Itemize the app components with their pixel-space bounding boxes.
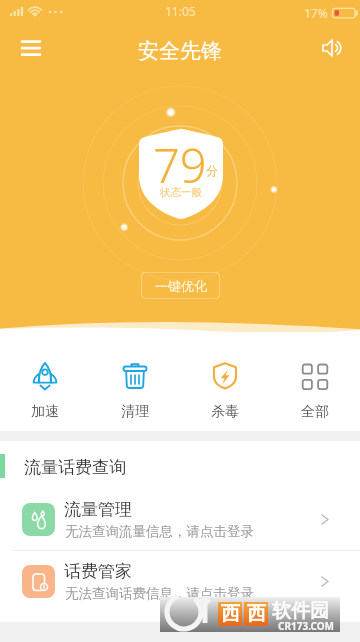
button[interactable]: 流量管理 bbox=[0, 489, 360, 550]
button[interactable]: 一键优化 bbox=[141, 272, 220, 299]
staticText: 话费管家 bbox=[64, 561, 132, 582]
staticText: 清理 bbox=[121, 403, 149, 421]
staticText: 无法查询流量信息，请点击登录 bbox=[65, 523, 254, 540]
staticText: 一键优化 bbox=[155, 278, 207, 294]
button[interactable]: Sound bbox=[310, 26, 354, 70]
button[interactable]: 加速 bbox=[0, 332, 90, 431]
staticText: 西 bbox=[247, 602, 266, 626]
staticText: 11:05 bbox=[165, 3, 196, 19]
staticText: 软件园 bbox=[272, 599, 329, 623]
button[interactable]: Menu bbox=[9, 26, 53, 70]
staticText: 加速 bbox=[31, 403, 59, 421]
button[interactable]: 全部 bbox=[270, 332, 360, 431]
button[interactable]: 话费管家 bbox=[0, 551, 360, 612]
staticText: 状态一般 bbox=[160, 186, 202, 199]
staticText: 流量管理 bbox=[64, 499, 132, 520]
staticText: 安全先锋 bbox=[138, 38, 222, 64]
staticText: 分 bbox=[206, 163, 218, 178]
staticText: 17% bbox=[304, 5, 328, 21]
staticText: 全部 bbox=[301, 403, 329, 421]
staticText: CR173.COM bbox=[278, 619, 335, 633]
staticText: 无法查询话费信息，请点击登录 bbox=[65, 585, 254, 602]
staticText: 流量话费查询 bbox=[24, 457, 126, 478]
button[interactable]: 清理 bbox=[90, 332, 180, 431]
button[interactable]: 杀毒 bbox=[180, 332, 270, 431]
staticText: 79 bbox=[153, 133, 207, 197]
staticText: 西 bbox=[221, 602, 240, 626]
staticText: 杀毒 bbox=[211, 403, 239, 421]
